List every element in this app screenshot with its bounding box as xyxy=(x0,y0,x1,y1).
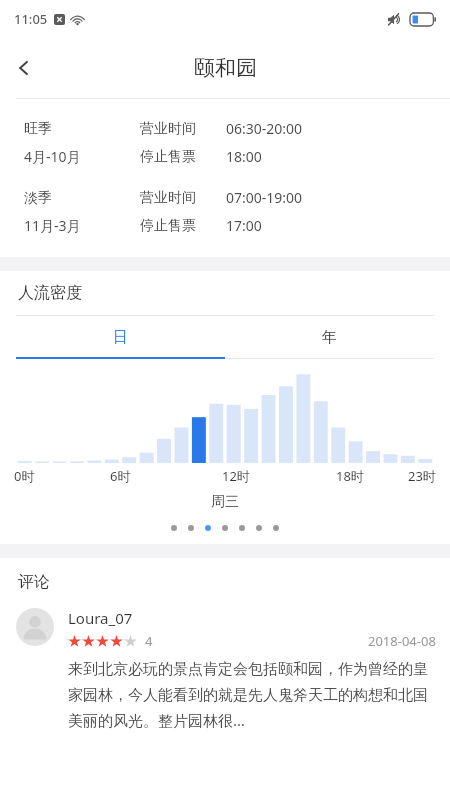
staticText: 日 xyxy=(113,328,128,347)
button[interactable] xyxy=(239,525,245,531)
staticText: 停止售票 xyxy=(140,148,226,166)
staticText: 18时 xyxy=(336,467,364,485)
button[interactable] xyxy=(188,525,194,531)
staticText: 07:00-19:00 xyxy=(226,188,303,207)
staticText: 17:00 xyxy=(226,216,262,235)
staticText: 4月-10月 xyxy=(24,147,140,166)
staticText: 12时 xyxy=(222,467,250,485)
staticText: 颐和园 xyxy=(194,55,257,81)
button[interactable] xyxy=(171,525,177,531)
button[interactable] xyxy=(273,525,279,531)
staticText: 06:30-20:00 xyxy=(226,119,303,138)
button[interactable]: Back xyxy=(0,44,48,92)
staticText: 营业时间 xyxy=(140,120,226,138)
button[interactable] xyxy=(205,525,211,531)
staticText: 旺季 xyxy=(24,120,140,138)
staticText: 23时 xyxy=(408,467,436,485)
staticText: 11:05 xyxy=(14,10,48,28)
staticText: 评论 xyxy=(18,572,50,592)
button[interactable]: 日 xyxy=(16,316,225,359)
staticText: 营业时间 xyxy=(140,189,226,207)
staticText: 淡季 xyxy=(24,189,140,207)
button[interactable] xyxy=(256,525,262,531)
staticText: 18:00 xyxy=(226,147,262,166)
staticText: 来到北京必玩的景点肯定会包括颐和园，作为曾经的皇家园林，今人能看到的就是先人鬼斧… xyxy=(68,660,436,730)
button[interactable]: Loura_07 xyxy=(16,608,436,730)
staticText: 0时 xyxy=(14,467,35,485)
staticText: 停止售票 xyxy=(140,217,226,235)
button[interactable] xyxy=(222,525,228,531)
staticText: Loura_07 xyxy=(68,608,133,628)
button[interactable]: 年 xyxy=(225,316,434,359)
staticText: 4 xyxy=(145,632,153,650)
staticText: 6时 xyxy=(110,467,131,485)
staticText: 11月-3月 xyxy=(24,216,140,235)
staticText: 人流密度 xyxy=(18,283,82,303)
staticText: 年 xyxy=(322,328,337,347)
staticText: 周三 xyxy=(0,493,450,511)
staticText: 2018-04-08 xyxy=(368,632,436,650)
